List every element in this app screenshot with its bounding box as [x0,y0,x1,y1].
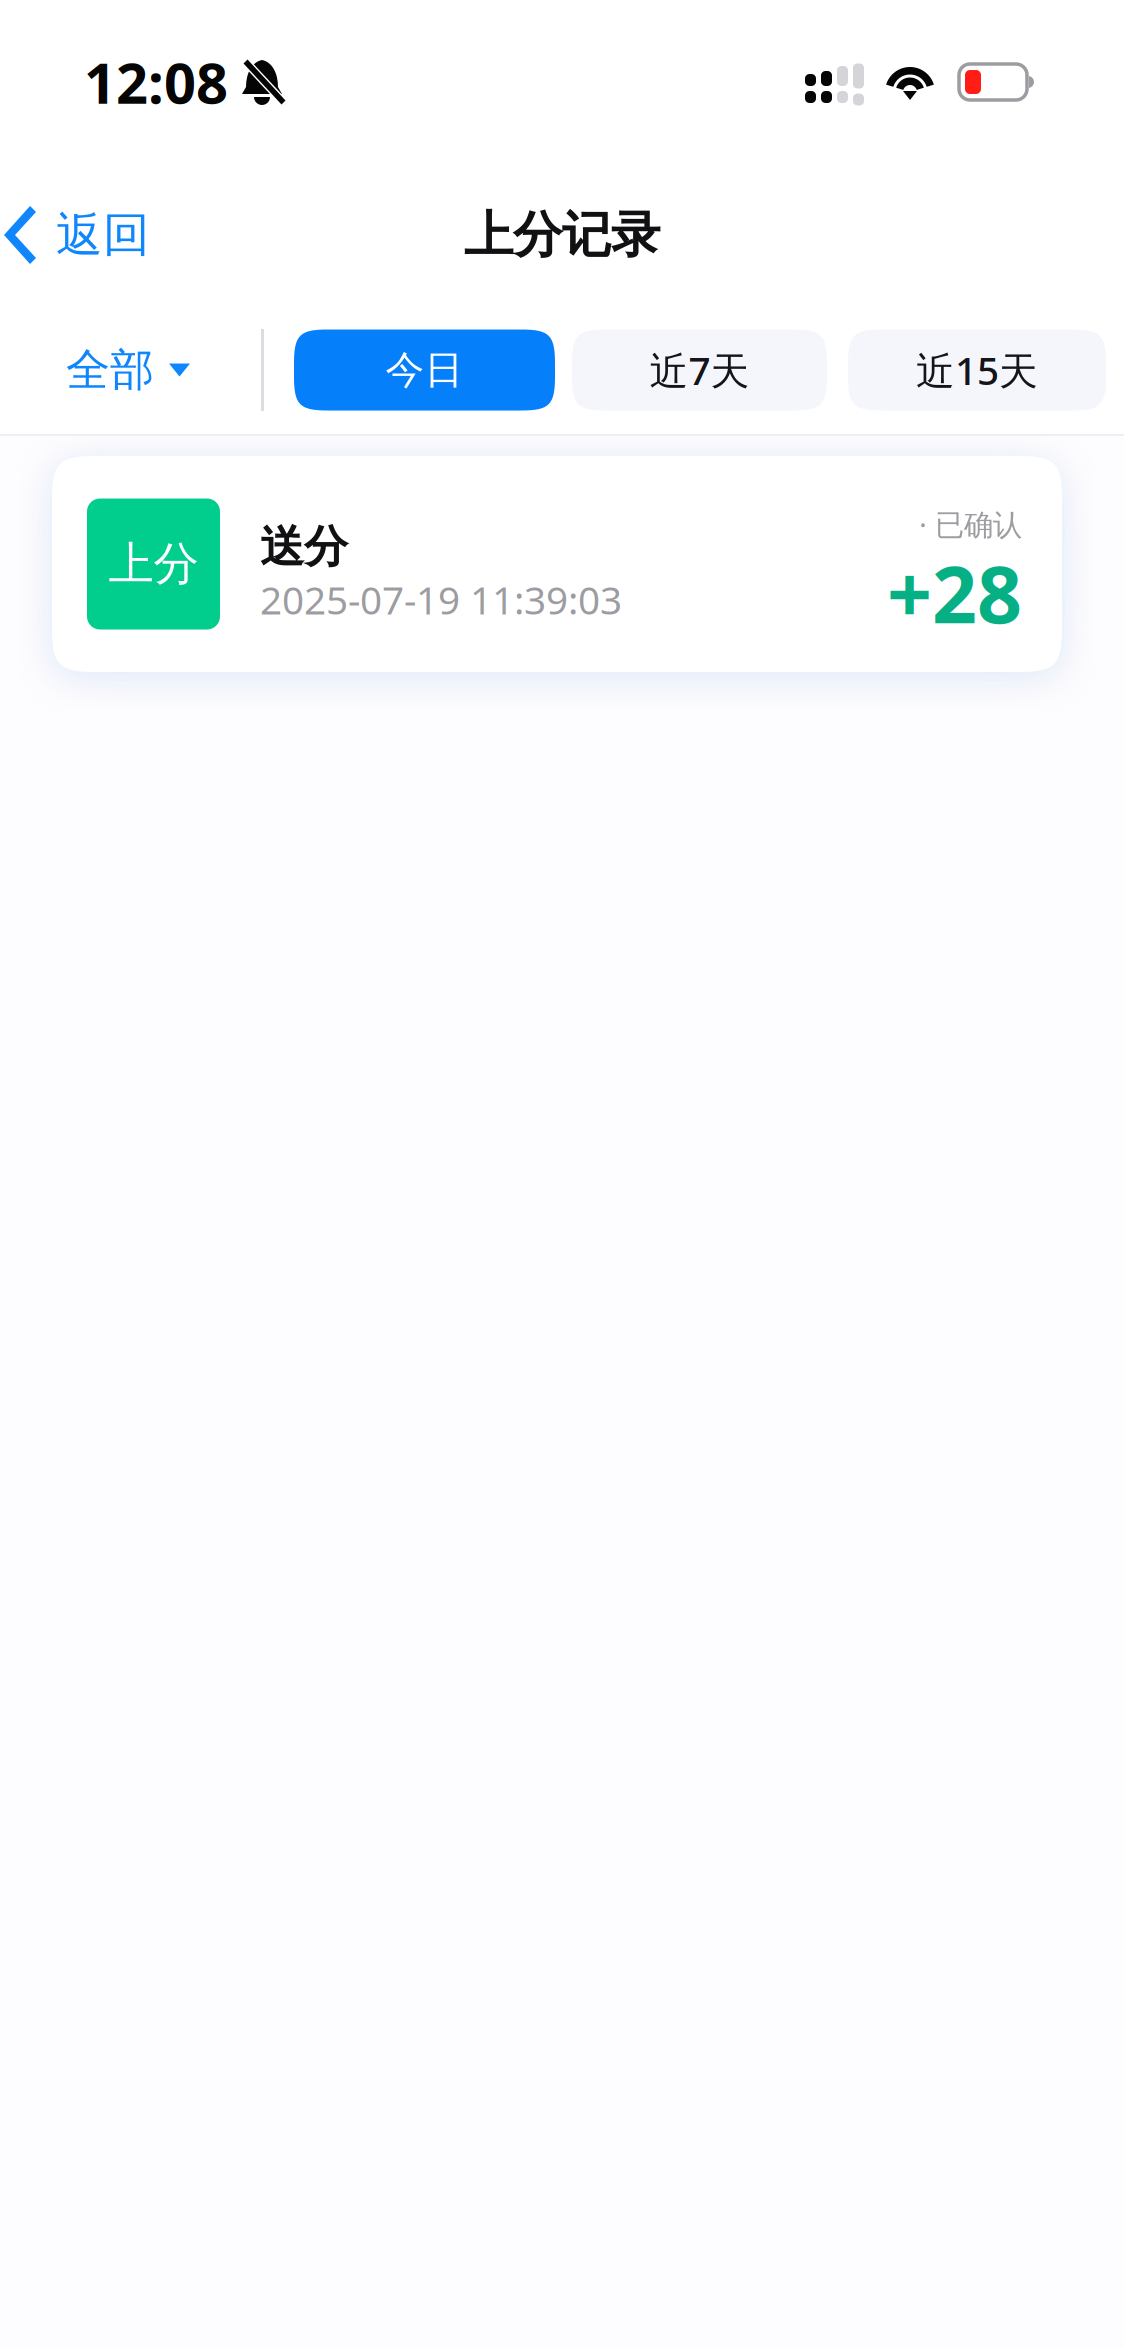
staticText: 2025-07-19 11:39:03 [260,574,622,625]
button[interactable]: 今日 [294,329,555,410]
staticText: 上分记录 [464,205,660,265]
staticText: 近15天 [916,344,1038,396]
staticText: +28 [887,540,1022,645]
button[interactable]: 近7天 [572,329,827,410]
button[interactable]: 近15天 [848,329,1106,410]
staticText: · 已确认 [919,504,1022,543]
staticText: 全部 [66,343,154,397]
button[interactable]: 全部 [0,306,261,434]
staticText: 近7天 [649,344,749,396]
button[interactable]: 返回 [0,164,170,306]
staticText: 送分 [260,520,348,574]
staticText: 12:08 [84,45,228,119]
staticText: 上分 [108,536,198,592]
staticText: 今日 [385,346,463,394]
staticText: 返回 [56,206,150,264]
button[interactable]: 上分 [52,456,1062,672]
